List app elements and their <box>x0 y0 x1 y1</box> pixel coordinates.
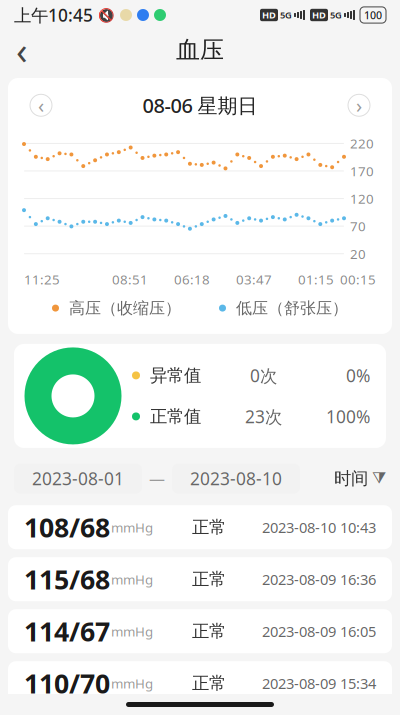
staticText: 06:18 <box>174 271 210 288</box>
staticText: 5G <box>280 9 292 21</box>
button[interactable]: 2023-08-10 <box>172 464 300 494</box>
staticText: 正常 <box>192 621 226 642</box>
button[interactable]: 114/67 <box>8 609 392 653</box>
staticText: HD <box>262 9 276 21</box>
staticText: 108/68 <box>24 509 110 545</box>
staticText: 114/67 <box>24 613 110 649</box>
button[interactable]: 108/68 <box>8 505 392 549</box>
staticText: 110/70 <box>24 665 110 701</box>
staticText: ⧩ <box>372 471 386 486</box>
staticText: 0% <box>346 364 370 387</box>
button[interactable]: 115/68 <box>8 557 392 601</box>
staticText: mmHg <box>111 518 153 536</box>
staticText: 2023-08-10 <box>190 467 282 490</box>
staticText: 20 <box>350 245 366 263</box>
staticText: 100% <box>326 405 370 428</box>
staticText: 01:15 <box>298 271 334 288</box>
staticText: 11:25 <box>24 271 60 288</box>
button[interactable]: 110/70 <box>8 661 392 705</box>
staticText: mmHg <box>111 570 153 588</box>
staticText: 5G <box>330 9 342 21</box>
staticText: 🔇 <box>98 7 115 23</box>
staticText: 08:51 <box>112 271 148 288</box>
staticText: — <box>149 468 165 489</box>
staticText: mmHg <box>111 674 153 692</box>
staticText: ‹ <box>16 25 28 75</box>
staticText: 70 <box>350 217 366 235</box>
staticText: 2023-08-09 15:34 <box>262 673 376 693</box>
staticText: 异常值 <box>150 365 201 386</box>
staticText: mmHg <box>111 622 153 640</box>
staticText: 高压（收缩压） <box>69 298 181 318</box>
staticText: 220 <box>350 135 374 152</box>
staticText: 正常 <box>192 569 226 590</box>
button[interactable]: 返回 <box>0 28 44 72</box>
staticText: 时间 <box>334 468 368 489</box>
staticText: 08-06 星期日 <box>142 92 257 119</box>
staticText: 00:15 <box>340 271 376 288</box>
staticText: 低压（舒张压） <box>236 298 348 318</box>
staticText: 上午10:45 <box>14 3 93 26</box>
staticText: ‹ <box>38 92 44 119</box>
button[interactable]: 后一天 <box>348 94 370 116</box>
button[interactable]: 时间 <box>334 462 386 495</box>
button[interactable]: 2023-08-01 <box>14 464 142 494</box>
staticText: 2023-08-09 16:05 <box>262 621 376 641</box>
staticText: 23次 <box>245 405 282 428</box>
staticText: 03:47 <box>236 271 272 288</box>
staticText: 正常 <box>192 673 226 694</box>
staticText: 血压 <box>176 35 224 65</box>
staticText: 0次 <box>250 364 277 387</box>
staticText: › <box>356 92 362 119</box>
staticText: 正常 <box>192 517 226 538</box>
staticText: 2023-08-10 10:43 <box>262 517 376 537</box>
staticText: 115/68 <box>24 561 110 597</box>
button[interactable]: 前一天 <box>30 94 52 116</box>
staticText: 正常值 <box>150 406 201 427</box>
staticText: 100 <box>364 8 382 22</box>
staticText: 120 <box>350 190 374 207</box>
staticText: 170 <box>350 162 374 180</box>
staticText: 2023-08-01 <box>32 467 124 490</box>
staticText: HD <box>312 9 326 21</box>
staticText: 2023-08-09 16:36 <box>262 569 376 589</box>
